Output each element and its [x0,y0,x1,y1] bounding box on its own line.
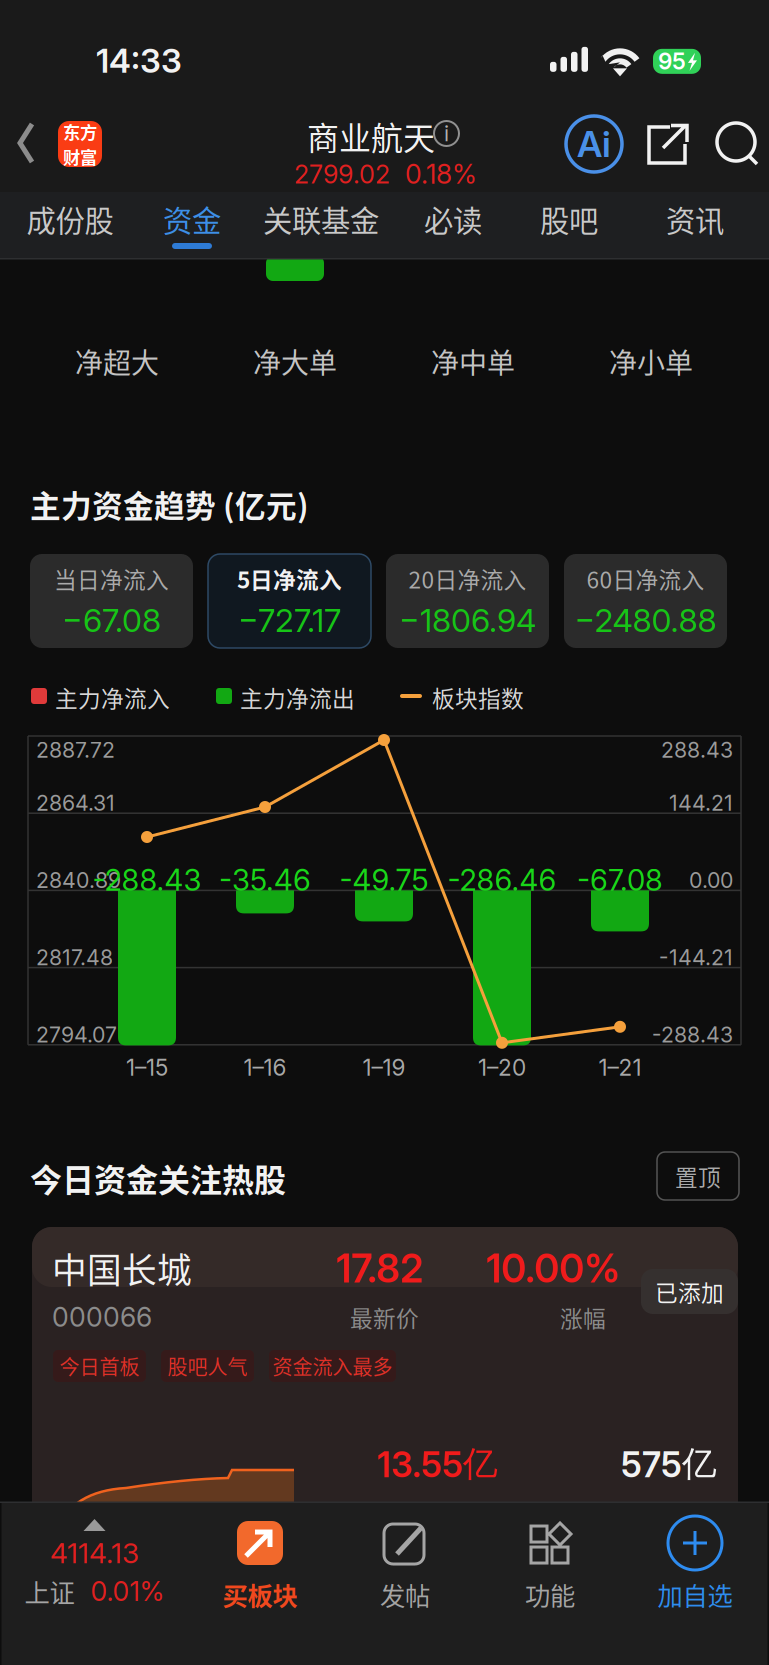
staticText: 60日净流入 [586,562,704,595]
staticText: 今日资金关注热股 [30,1155,286,1201]
staticText: 13.55亿 [377,1442,498,1486]
button[interactable]: 功能 [477,1504,622,1665]
staticText: 资金流入最多 [272,1351,392,1380]
staticText: 1–21 [598,1054,641,1081]
button[interactable]: 关联基金 [244,192,398,258]
staticText: −67.08 [62,601,161,640]
staticText: 主力净流入 [55,681,170,714]
staticText: 0.01% [90,1575,164,1607]
staticText: 20日净流入 [408,562,526,595]
staticText: 买板块 [222,1576,297,1613]
button[interactable]: AI 助手 [566,116,622,172]
staticText: 最新价 [350,1301,419,1334]
staticText: 净超大 [75,341,159,381]
staticText: 涨幅 [560,1301,606,1334]
staticText: −1806.94 [399,601,536,640]
staticText: −727.17 [238,601,341,640]
staticText: 主力净流出 [240,681,355,714]
staticText: 0.00 [689,867,733,893]
staticText: 板块指数 [432,681,524,714]
staticText: 净大单 [253,341,337,381]
staticText: -49.75 [339,862,428,898]
button[interactable]: 5日净流入 [208,554,371,648]
staticText: 1–20 [478,1054,526,1081]
staticText: 中国长城 [52,1243,192,1293]
staticText: 4114.13 [50,1536,139,1570]
button[interactable]: 加自选 [622,1504,767,1665]
button[interactable]: 股吧 [508,192,630,258]
staticText: 1–19 [362,1054,405,1081]
staticText: i [444,121,449,146]
button[interactable]: 置顶 [657,1152,739,1200]
staticText: 2864.31 [36,790,115,816]
staticText: 2887.72 [36,737,115,763]
button[interactable]: 当日净流入 [30,554,193,648]
staticText: 2817.48 [36,945,113,970]
button[interactable]: 成份股 [0,192,140,258]
staticText: 1–16 [243,1054,286,1081]
staticText: 0.18% [405,158,477,190]
staticText: -286.46 [447,862,556,898]
button[interactable]: 买板块 [187,1504,332,1665]
staticText: 575亿 [621,1442,717,1486]
staticText: 商业航天 [307,113,435,159]
staticText: -288.43 [92,862,201,898]
staticText: 288.43 [661,737,733,763]
button[interactable]: 返回 [0,96,125,192]
button[interactable]: 发帖 [332,1504,477,1665]
staticText: 股吧 [540,198,598,240]
staticText: 144.21 [669,790,733,816]
staticText: −2480.88 [574,601,716,640]
staticText: 净小单 [609,341,693,381]
staticText: Ai [577,122,611,166]
staticText: 17.82 [336,1245,423,1292]
staticText: -67.08 [577,862,663,898]
staticText: 置顶 [675,1160,721,1192]
button[interactable]: 必读 [398,192,508,258]
staticText: 当日净流入 [54,562,169,595]
staticText: 净中单 [431,341,515,381]
staticText: 资金 [163,198,221,240]
staticText: 财富 [63,144,97,169]
staticText: -35.46 [219,862,311,898]
staticText: 2840.89 [36,867,121,893]
button[interactable]: 搜索 [713,125,759,169]
staticText: 2794.07 [36,1022,117,1048]
staticText: 必读 [424,198,482,240]
staticText: 股吧人气 [167,1351,247,1380]
staticText: 东方 [63,119,97,144]
staticText: 关联基金 [263,198,379,240]
staticText: 发帖 [380,1576,430,1613]
button[interactable]: 分享 [645,125,691,169]
staticText: 5日净流入 [237,562,342,595]
staticText: 主力资金趋势 (亿元) [30,482,309,526]
staticText: 今日首板 [59,1351,139,1380]
button[interactable]: 资金 [140,192,244,258]
staticText: 10.00% [486,1245,620,1292]
staticText: 资讯 [666,198,724,240]
button[interactable]: 60日净流入 [564,554,727,648]
staticText: 000066 [52,1301,152,1333]
staticText: 成份股 [26,198,113,240]
staticText: 2799.02 [294,159,390,190]
staticText: 功能 [525,1576,575,1613]
button[interactable]: 20日净流入 [386,554,549,648]
button[interactable]: 资讯 [630,192,760,258]
staticText: -144.21 [659,945,733,970]
staticText: 加自选 [657,1576,732,1613]
staticText: 95 [658,48,686,75]
staticText: 1–15 [126,1054,168,1081]
staticText: 14:33 [96,40,182,81]
button[interactable]: 已添加 [641,1269,738,1314]
staticText: -288.43 [652,1022,733,1048]
staticText: 上证 [24,1573,74,1610]
button[interactable]: 4114.13 [1,1503,187,1665]
staticText: 已添加 [655,1275,724,1308]
